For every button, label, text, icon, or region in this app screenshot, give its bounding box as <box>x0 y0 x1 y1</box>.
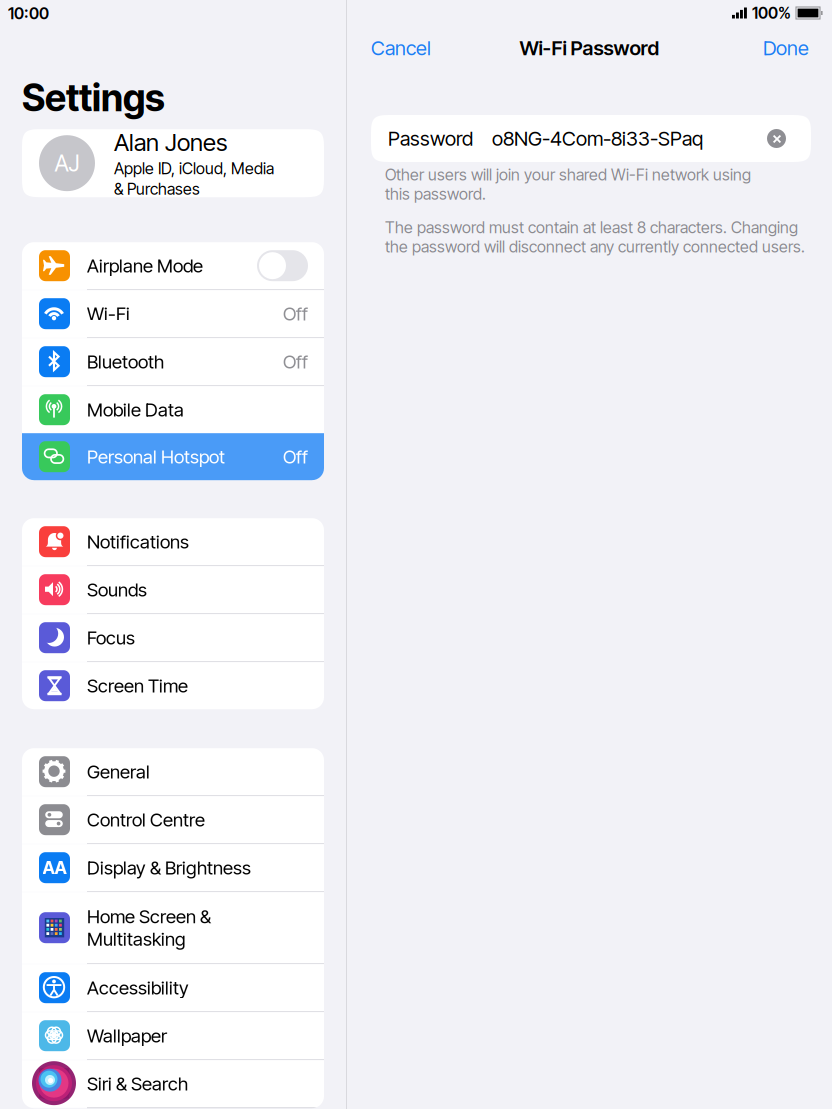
button[interactable]: Control Centre <box>22 796 324 843</box>
staticText: 100% <box>752 3 791 23</box>
staticText: Sounds <box>87 578 147 601</box>
staticText: 10:00 <box>8 4 49 23</box>
staticText: Personal Hotspot <box>87 445 225 468</box>
staticText: Off <box>283 302 308 325</box>
staticText: Siri & Search <box>87 1072 188 1095</box>
staticText: The password must contain at least 8 cha… <box>385 218 805 256</box>
staticText: Airplane Mode <box>87 254 203 277</box>
button[interactable]: Screen Time <box>22 662 324 709</box>
staticText: Notifications <box>87 530 189 553</box>
button[interactable]: Personal Hotspot <box>22 433 324 480</box>
staticText: Home Screen & Multitasking <box>87 905 211 950</box>
staticText: Wi-Fi <box>87 302 130 325</box>
staticText: o8NG-4Com-8i33-SPaq <box>492 126 703 151</box>
staticText: Password <box>388 126 473 151</box>
button[interactable]: AA <box>22 844 324 891</box>
staticText: Alan Jones <box>114 128 227 157</box>
button[interactable]: General <box>22 748 324 795</box>
button[interactable]: Sounds <box>22 566 324 613</box>
button[interactable]: AJ <box>22 129 324 197</box>
staticText: Cancel <box>371 36 431 60</box>
button[interactable]: Focus <box>22 614 324 661</box>
button[interactable]: Mobile Data <box>22 386 324 433</box>
staticText: Off <box>283 445 308 468</box>
staticText: Off <box>283 350 308 373</box>
button[interactable]: Notifications <box>22 518 324 565</box>
staticText: Bluetooth <box>87 350 164 373</box>
button[interactable]: Cancel <box>371 36 431 60</box>
button[interactable]: Done <box>763 36 809 60</box>
staticText: Wi-Fi Password <box>519 36 659 60</box>
staticText: Display & Brightness <box>87 856 251 879</box>
button[interactable]: Accessibility <box>22 964 324 1011</box>
staticText: Wallpaper <box>87 1024 167 1047</box>
staticText: Screen Time <box>87 674 188 697</box>
staticText: Mobile Data <box>87 398 184 421</box>
staticText: Accessibility <box>87 976 189 999</box>
staticText: Control Centre <box>87 808 205 831</box>
button[interactable]: Wi-Fi <box>22 290 324 337</box>
staticText: Apple ID, iCloud, Media <box>114 159 274 178</box>
staticText: AJ <box>54 149 79 177</box>
button[interactable]: Bluetooth <box>22 338 324 385</box>
button[interactable]: Siri & Search <box>22 1060 324 1107</box>
button[interactable]: Wallpaper <box>22 1012 324 1059</box>
staticText: General <box>87 760 150 783</box>
button[interactable]: Airplane Mode <box>22 242 324 289</box>
button[interactable]: Home Screen & Multitasking <box>22 892 324 963</box>
staticText: & Purchases <box>114 179 200 199</box>
staticText: Other users will join your shared Wi-Fi … <box>385 165 751 204</box>
staticText: Focus <box>87 626 135 649</box>
staticText: Settings <box>22 75 165 120</box>
button[interactable]: Clear password <box>767 129 786 148</box>
staticText: Done <box>763 36 809 60</box>
staticText: AA <box>42 857 66 878</box>
